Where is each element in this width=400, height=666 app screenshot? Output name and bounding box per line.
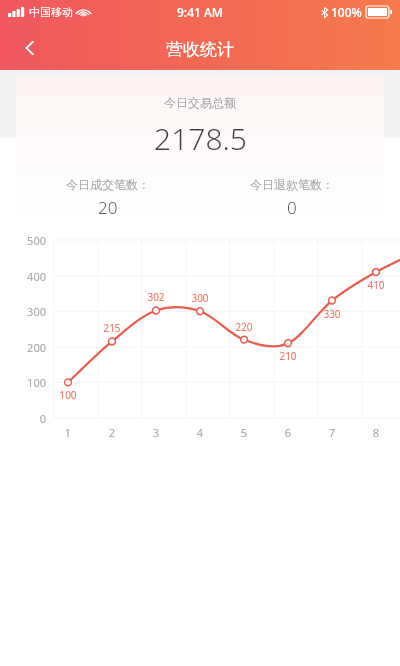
staticText: 100%	[331, 4, 362, 20]
staticText: 20	[98, 196, 118, 219]
staticText: 中国移动	[29, 5, 73, 19]
staticText: 今日交易总额	[164, 95, 236, 110]
button[interactable]: Back	[8, 26, 52, 70]
staticText: 1	[58, 425, 78, 440]
staticText: 今日成交笔数：	[66, 177, 150, 192]
staticText: 300	[16, 304, 46, 319]
staticText: 410	[360, 278, 392, 292]
staticText: 营收统计	[166, 39, 234, 60]
staticText: 200	[16, 340, 46, 355]
staticText: 5	[234, 425, 254, 440]
staticText: 0	[287, 196, 297, 219]
staticText: 6	[278, 425, 298, 440]
staticText: 9:41 AM	[177, 4, 223, 20]
staticText: 4	[190, 425, 210, 440]
staticText: 300	[184, 291, 216, 305]
staticText: 302	[140, 290, 172, 304]
staticText: 2178.5	[154, 118, 247, 159]
staticText: 330	[316, 307, 348, 321]
staticText: 2	[102, 425, 122, 440]
staticText: 3	[146, 425, 166, 440]
staticText: 220	[228, 320, 260, 334]
staticText: 今日退款笔数：	[250, 177, 334, 192]
button[interactable]: 今日退款笔数：	[200, 177, 384, 219]
staticText: 400	[16, 269, 46, 284]
button[interactable]: 今日成交笔数：	[16, 177, 200, 219]
staticText: 7	[322, 425, 342, 440]
button[interactable]: 交易总额	[28, 150, 92, 182]
button[interactable]: 今日交易总额	[16, 76, 384, 222]
staticText: 8	[366, 425, 386, 440]
staticText: 210	[272, 349, 304, 363]
staticText: 0	[16, 411, 46, 426]
staticText: 100	[16, 375, 46, 390]
staticText: 100	[52, 388, 84, 402]
staticText: 500	[16, 233, 46, 248]
staticText: 215	[96, 321, 128, 335]
